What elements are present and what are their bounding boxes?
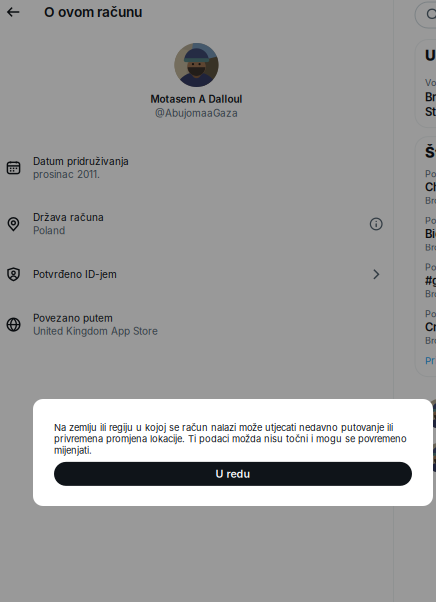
staticText: Uživo [425, 46, 436, 64]
staticText: Povezano putem [33, 312, 113, 324]
staticText: Motasem A Dalloul [150, 93, 242, 105]
staticText: Biden [425, 227, 436, 241]
button[interactable]: U redu [54, 462, 412, 486]
button[interactable]: Posao · U trendu [425, 168, 436, 215]
staticText: O ovom računu [44, 4, 142, 20]
staticText: @AbujomaaGaza [155, 107, 238, 119]
staticText: Vodi [425, 77, 436, 88]
button[interactable]: Netko drugi [425, 443, 436, 473]
button[interactable]: Povezano putem [0, 296, 393, 353]
staticText: United Kingdom App Store [33, 325, 158, 337]
staticText: #gaza [425, 274, 436, 287]
staticText: Potvrđeno ID-jem [33, 268, 117, 280]
button[interactable]: Politika · U trendu [425, 215, 436, 262]
staticText: Datum pridruživanja [33, 155, 129, 167]
staticText: Posao · U trendu [425, 168, 436, 179]
staticText: Stephen Curry [425, 105, 436, 119]
button[interactable]: Politika · U trendu [425, 262, 436, 308]
staticText: Broj objava: 44 tis. [425, 335, 436, 346]
button[interactable]: Država računa [0, 196, 393, 252]
staticText: Politika · U trendu [425, 215, 436, 226]
button[interactable]: Prikaži više [425, 355, 436, 367]
staticText: Država računa [33, 211, 104, 223]
staticText: Što se događa [425, 144, 436, 161]
staticText: Posao · U trendu [425, 308, 436, 319]
button[interactable]: Posao · U trendu [425, 308, 436, 355]
button[interactable]: Netko [425, 399, 436, 429]
staticText: Christmas [425, 180, 436, 194]
staticText: Na zemlju ili regiju u kojoj se račun na… [54, 422, 407, 456]
staticText: prosinac 2011. [33, 168, 100, 180]
staticText: U redu [215, 467, 250, 480]
button[interactable]: Pretraži [415, 2, 436, 28]
button[interactable]: Potvrđeno ID-jem [0, 252, 393, 296]
staticText: Prikaži više [425, 355, 436, 367]
button[interactable]: Datum pridruživanja [0, 140, 393, 196]
button[interactable]: Natrag [0, 0, 27, 24]
staticText: Brooklyn Nets protiv [425, 90, 436, 104]
staticText: Politika · U trendu [425, 262, 436, 273]
staticText: Broj objava: 95 tis. [425, 288, 436, 299]
staticText: Cryptocurrency [425, 320, 436, 334]
staticText: Poland [33, 224, 65, 237]
staticText: Broj objava: 150 tis. [425, 242, 436, 253]
staticText: Broj objava: 25 tis. [425, 195, 436, 206]
